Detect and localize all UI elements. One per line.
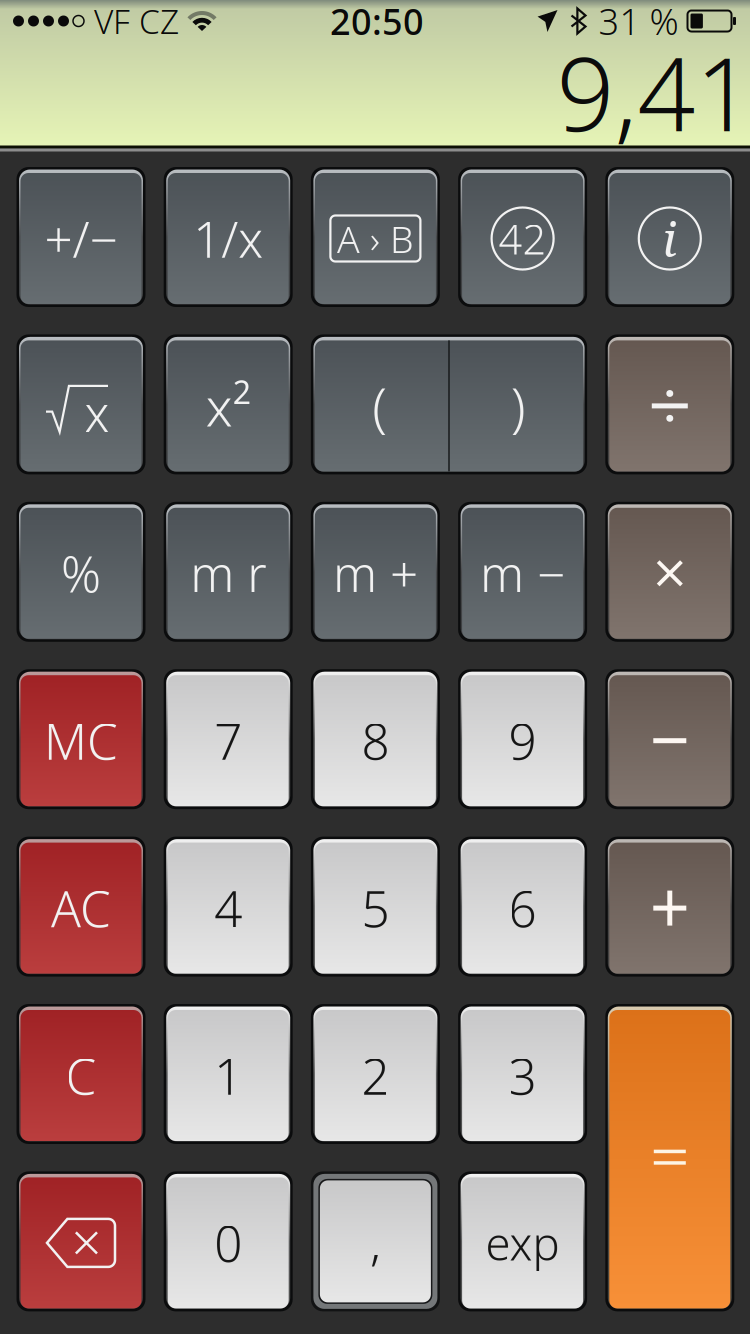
staticText: 2 [361, 1043, 389, 1108]
staticText: 1/x [193, 206, 263, 271]
staticText: 8 [361, 708, 389, 773]
staticText: 5 [361, 875, 389, 941]
button[interactable]: m r [164, 502, 293, 642]
staticText: x [206, 370, 233, 441]
staticText: m + [333, 540, 418, 606]
button[interactable]: 7 [164, 669, 293, 809]
staticText: 20:50 [330, 0, 424, 45]
button[interactable]: 1/x [164, 167, 293, 307]
staticText: 31 % [598, 0, 678, 45]
button[interactable] [605, 334, 734, 474]
button[interactable]: % [16, 502, 145, 642]
button[interactable]: ( [311, 334, 587, 474]
button[interactable]: i [605, 167, 734, 307]
staticText: VF CZ [94, 0, 179, 43]
button[interactable]: A › B [311, 167, 440, 307]
staticText: i [662, 206, 677, 271]
button[interactable]: C [16, 1004, 145, 1144]
button[interactable]: MC [16, 669, 145, 809]
button[interactable]: +/− [16, 167, 145, 307]
button[interactable]: Minus [605, 669, 734, 809]
staticText: MC [44, 708, 118, 773]
staticText: x [84, 380, 109, 446]
staticText: 3 [509, 1043, 537, 1108]
staticText: m − [480, 540, 565, 606]
staticText: 42 [499, 211, 547, 266]
button[interactable]: 6 [458, 837, 587, 977]
button[interactable]: , [311, 1171, 440, 1311]
staticText: 0 [214, 1210, 242, 1276]
staticText: 6 [509, 875, 537, 941]
button[interactable]: Multiply [605, 502, 734, 642]
staticText: 9,41 [556, 25, 750, 159]
button[interactable]: 3 [458, 1004, 587, 1144]
staticText: C [65, 1043, 96, 1108]
staticText: , [370, 1209, 381, 1274]
button[interactable]: x [16, 334, 145, 474]
staticText: exp [486, 1213, 560, 1273]
staticText: 4 [214, 875, 242, 941]
staticText: A › B [337, 214, 414, 263]
button[interactable]: exp [458, 1171, 587, 1311]
button[interactable]: Backspace [16, 1171, 145, 1311]
button[interactable]: Plus [605, 837, 734, 977]
button[interactable] [605, 1004, 734, 1311]
button[interactable]: AC [16, 837, 145, 977]
button[interactable]: 5 [311, 837, 440, 977]
staticText: ) [511, 370, 526, 441]
button[interactable]: 2 [311, 1004, 440, 1144]
staticText: m r [190, 540, 266, 606]
button[interactable]: x [164, 334, 293, 474]
button[interactable]: m + [311, 502, 440, 642]
button[interactable]: m − [458, 502, 587, 642]
staticText: 2 [233, 371, 251, 413]
button[interactable]: 1 [164, 1004, 293, 1144]
staticText: 1 [214, 1043, 242, 1108]
staticText: +/− [44, 206, 117, 271]
button[interactable]: 0 [164, 1171, 293, 1311]
button[interactable]: 9 [458, 669, 587, 809]
staticText: % [61, 540, 101, 606]
staticText: ( [372, 370, 387, 441]
staticText: AC [51, 875, 111, 941]
button[interactable]: 42 [458, 167, 587, 307]
staticText: 7 [214, 708, 242, 773]
button[interactable]: 8 [311, 669, 440, 809]
staticText: 9 [509, 708, 537, 773]
button[interactable]: 4 [164, 837, 293, 977]
